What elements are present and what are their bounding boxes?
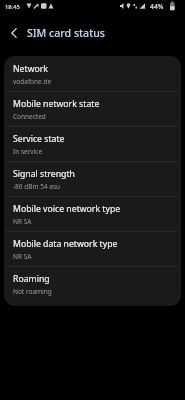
staticText: Mobile data network type	[13, 238, 118, 250]
button[interactable]: Roaming	[4, 267, 181, 302]
staticText: Connected	[13, 112, 46, 121]
staticText: Service state	[13, 133, 65, 145]
staticText: 44%	[150, 2, 164, 11]
staticText: SIM card status	[27, 26, 106, 40]
staticText: Mobile network state	[13, 98, 100, 110]
staticText: NR SA	[13, 252, 32, 261]
staticText: Network	[13, 63, 48, 75]
staticText: Signal strength	[13, 168, 75, 180]
staticText: Mobile voice network type	[13, 203, 121, 215]
staticText: Not roaming	[13, 287, 52, 296]
button[interactable]: Mobile data network type	[4, 232, 181, 267]
staticText: vodafone.de	[13, 77, 52, 86]
staticText: In service	[13, 147, 43, 156]
button[interactable]: Service state	[4, 127, 181, 162]
staticText: Roaming	[13, 273, 50, 285]
staticText: 18:45	[5, 3, 20, 11]
staticText: NR SA	[13, 217, 32, 226]
button[interactable]: Mobile network state	[4, 92, 181, 127]
button[interactable]: Signal strength	[4, 162, 181, 197]
button[interactable]: Mobile voice network type	[4, 197, 181, 232]
button[interactable]: Network	[4, 57, 181, 92]
button[interactable]	[6, 25, 22, 41]
staticText: -86 dBm 54 asu	[13, 182, 61, 191]
